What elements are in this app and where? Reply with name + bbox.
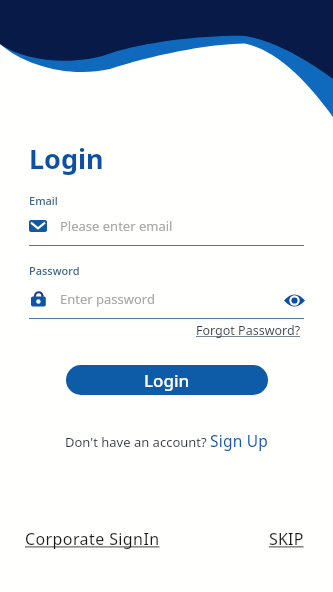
button[interactable]: Login — [66, 365, 268, 395]
staticText: Login — [144, 369, 190, 392]
button[interactable] — [280, 289, 308, 311]
staticText: Login — [29, 140, 104, 177]
staticText: Enter password — [60, 290, 155, 308]
staticText: Email — [29, 193, 58, 208]
button[interactable]: SKIP — [269, 528, 304, 550]
staticText: Please enter email — [60, 217, 173, 235]
button[interactable]: Enter password — [29, 285, 275, 311]
staticText: Password — [29, 263, 80, 278]
button[interactable]: Please enter email — [29, 212, 305, 238]
button[interactable]: Corporate SignIn — [25, 528, 160, 550]
button[interactable]: Don't have an account? Sign Up — [65, 430, 268, 451]
staticText: Don't have an account? Sign Up — [65, 430, 268, 451]
button[interactable]: Forgot Password? — [196, 322, 301, 339]
